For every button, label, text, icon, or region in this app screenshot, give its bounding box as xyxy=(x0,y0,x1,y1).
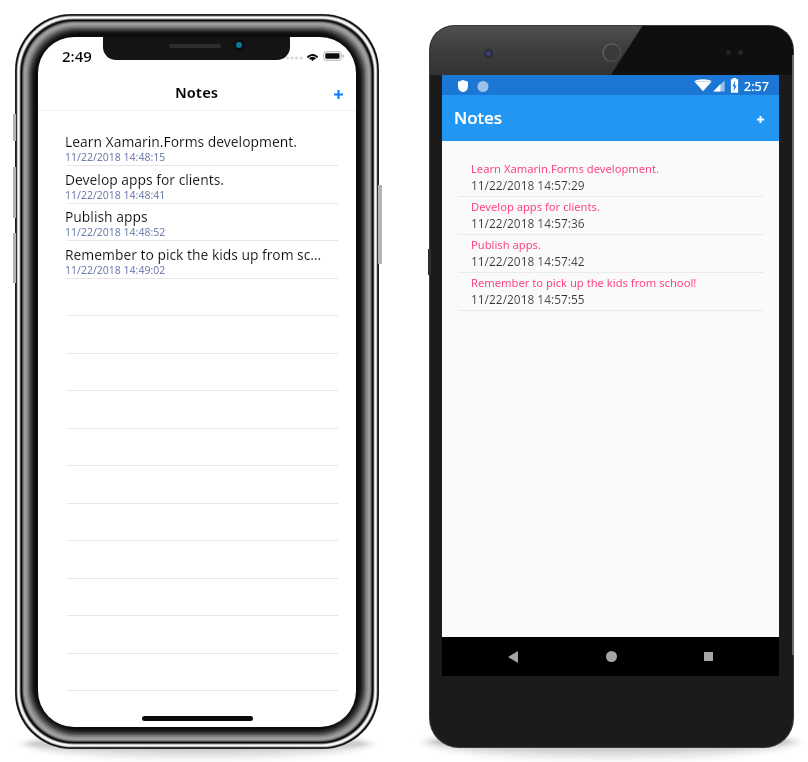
button[interactable]: Learn Xamarin.Forms development. xyxy=(65,132,336,165)
button[interactable]: Develop apps for clients. xyxy=(65,170,336,203)
staticText: 11/22/2018 14:57:42 xyxy=(471,253,585,269)
staticText: 11/22/2018 14:48:52 xyxy=(65,225,166,239)
staticText: 2:49 xyxy=(62,46,92,66)
button[interactable]: Remember to pick up the kids from school… xyxy=(471,275,761,306)
staticText: 11/22/2018 14:57:36 xyxy=(471,215,585,231)
button[interactable]: Add note xyxy=(321,77,355,111)
button[interactable]: Recents xyxy=(686,637,730,676)
button[interactable]: Learn Xamarin.Forms development. xyxy=(471,161,761,192)
staticText: Notes xyxy=(454,106,503,129)
staticText: Learn Xamarin.Forms development. xyxy=(471,161,660,176)
staticText: Develop apps for clients. xyxy=(471,199,600,214)
staticText: Remember to pick up the kids from school… xyxy=(471,275,697,290)
staticText: Develop apps for clients. xyxy=(65,170,224,189)
button[interactable]: Add note xyxy=(740,99,780,139)
staticText: 11/22/2018 14:49:02 xyxy=(65,263,166,277)
staticText: 11/22/2018 14:57:55 xyxy=(471,291,585,307)
button[interactable]: Publish apps xyxy=(65,207,336,240)
staticText: 11/22/2018 14:48:15 xyxy=(65,150,166,164)
staticText: Learn Xamarin.Forms development. xyxy=(65,132,297,151)
staticText: 2:57 xyxy=(744,78,769,95)
button[interactable]: Remember to pick the kids up from sc… xyxy=(65,245,336,278)
staticText: Publish apps. xyxy=(471,237,541,252)
staticText: 11/22/2018 14:57:29 xyxy=(471,177,585,193)
button[interactable]: Back xyxy=(491,637,535,676)
staticText: Publish apps xyxy=(65,207,148,226)
staticText: Notes xyxy=(175,82,219,102)
button[interactable]: Home xyxy=(589,637,633,676)
staticText: Remember to pick the kids up from sc… xyxy=(65,245,322,264)
staticText: 11/22/2018 14:48:41 xyxy=(65,188,166,202)
button[interactable]: Develop apps for clients. xyxy=(471,199,761,230)
button[interactable]: Publish apps. xyxy=(471,237,761,268)
